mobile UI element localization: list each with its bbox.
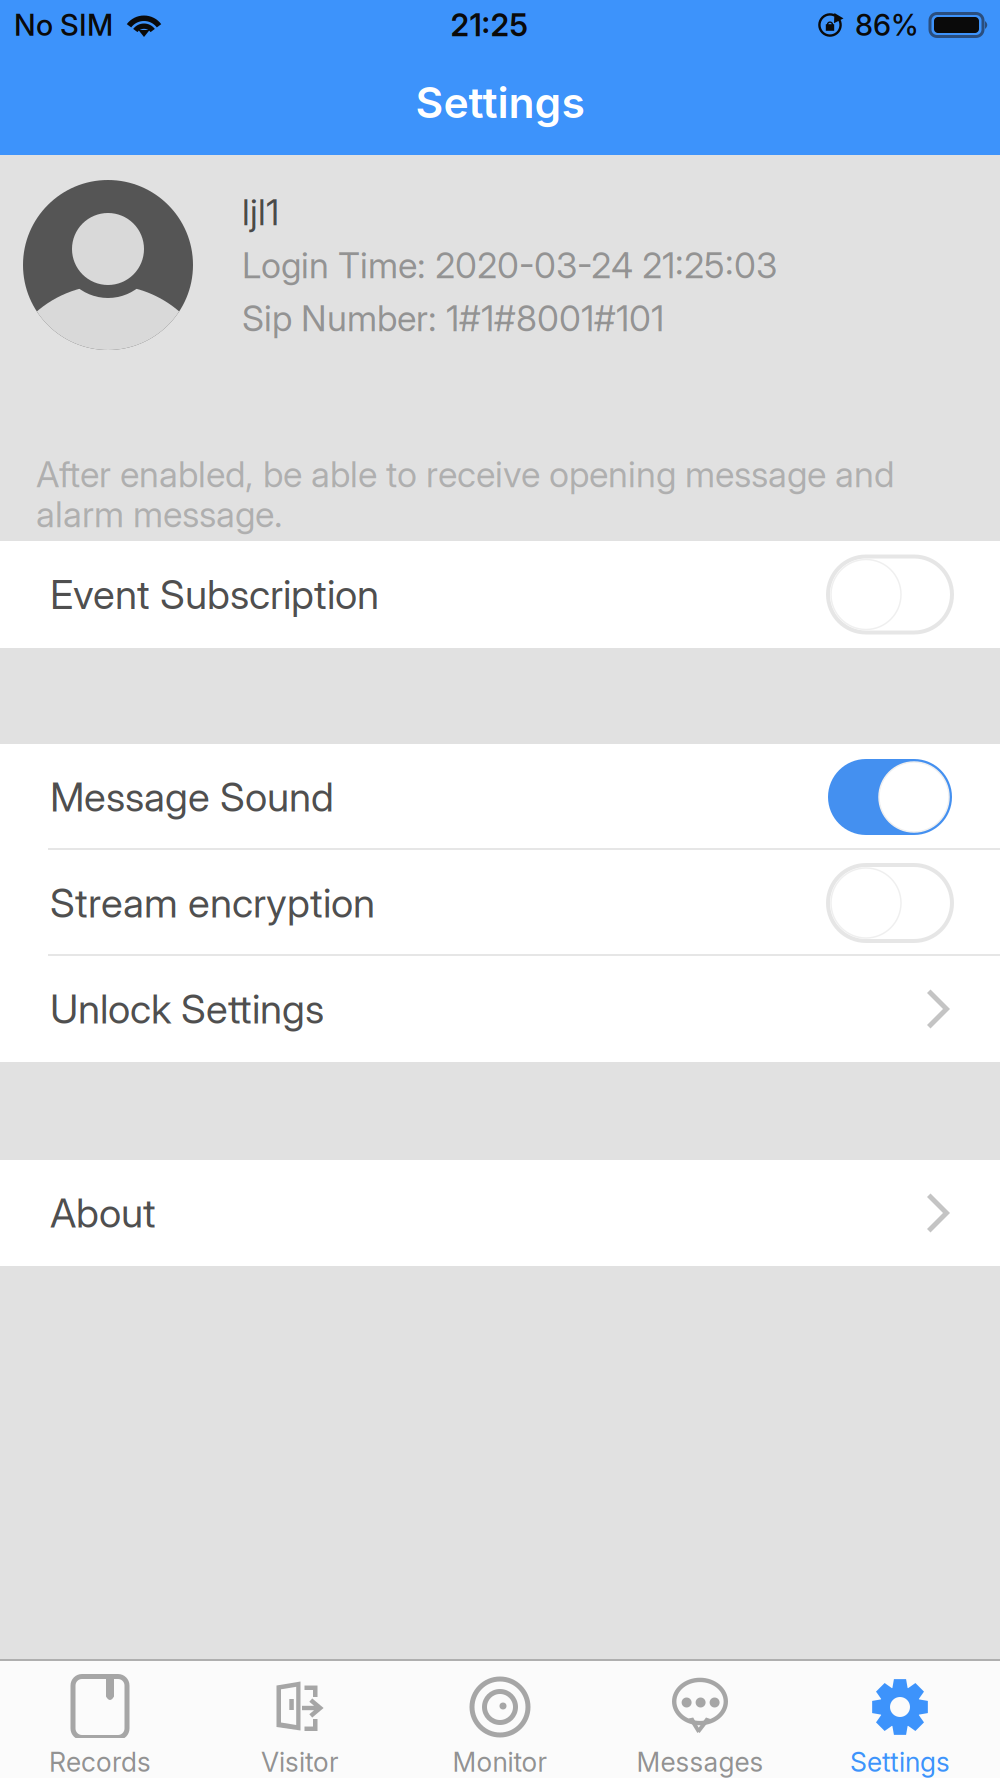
button[interactable]: Settings bbox=[800, 1661, 1000, 1778]
button[interactable]: Event Subscription bbox=[0, 541, 1000, 648]
button[interactable]: Records bbox=[0, 1661, 200, 1778]
staticText: Unlock Settings bbox=[50, 985, 324, 1033]
staticText: After enabled, be able to receive openin… bbox=[36, 453, 894, 496]
button[interactable]: Stream encryption bbox=[0, 850, 1000, 956]
staticText: Records bbox=[49, 1746, 151, 1778]
staticText: Sip Number: 1#1#8001#101 bbox=[242, 297, 664, 340]
staticText: Settings bbox=[850, 1746, 950, 1778]
staticText: Visitor bbox=[261, 1746, 339, 1778]
staticText: alarm message. bbox=[36, 493, 283, 536]
staticText: Monitor bbox=[452, 1746, 547, 1778]
button[interactable]: Message Sound bbox=[0, 744, 1000, 850]
staticText: No SIM bbox=[14, 7, 113, 43]
staticText: 86% bbox=[855, 7, 919, 43]
staticText: Login Time: 2020-03-24 21:25:03 bbox=[242, 244, 777, 287]
staticText: Message Sound bbox=[50, 773, 334, 821]
staticText: About bbox=[50, 1189, 156, 1237]
button[interactable]: About bbox=[0, 1160, 1000, 1266]
staticText: Stream encryption bbox=[50, 879, 375, 927]
button[interactable]: Unlock Settings bbox=[0, 956, 1000, 1062]
staticText: 21:25 bbox=[450, 6, 527, 43]
staticText: Messages bbox=[636, 1746, 763, 1778]
staticText: Settings bbox=[415, 77, 584, 128]
button[interactable]: Messages bbox=[600, 1661, 800, 1778]
button[interactable]: Visitor bbox=[200, 1661, 400, 1778]
button[interactable]: Monitor bbox=[400, 1661, 600, 1778]
staticText: ljl1 bbox=[242, 191, 279, 234]
staticText: Event Subscription bbox=[50, 570, 379, 619]
